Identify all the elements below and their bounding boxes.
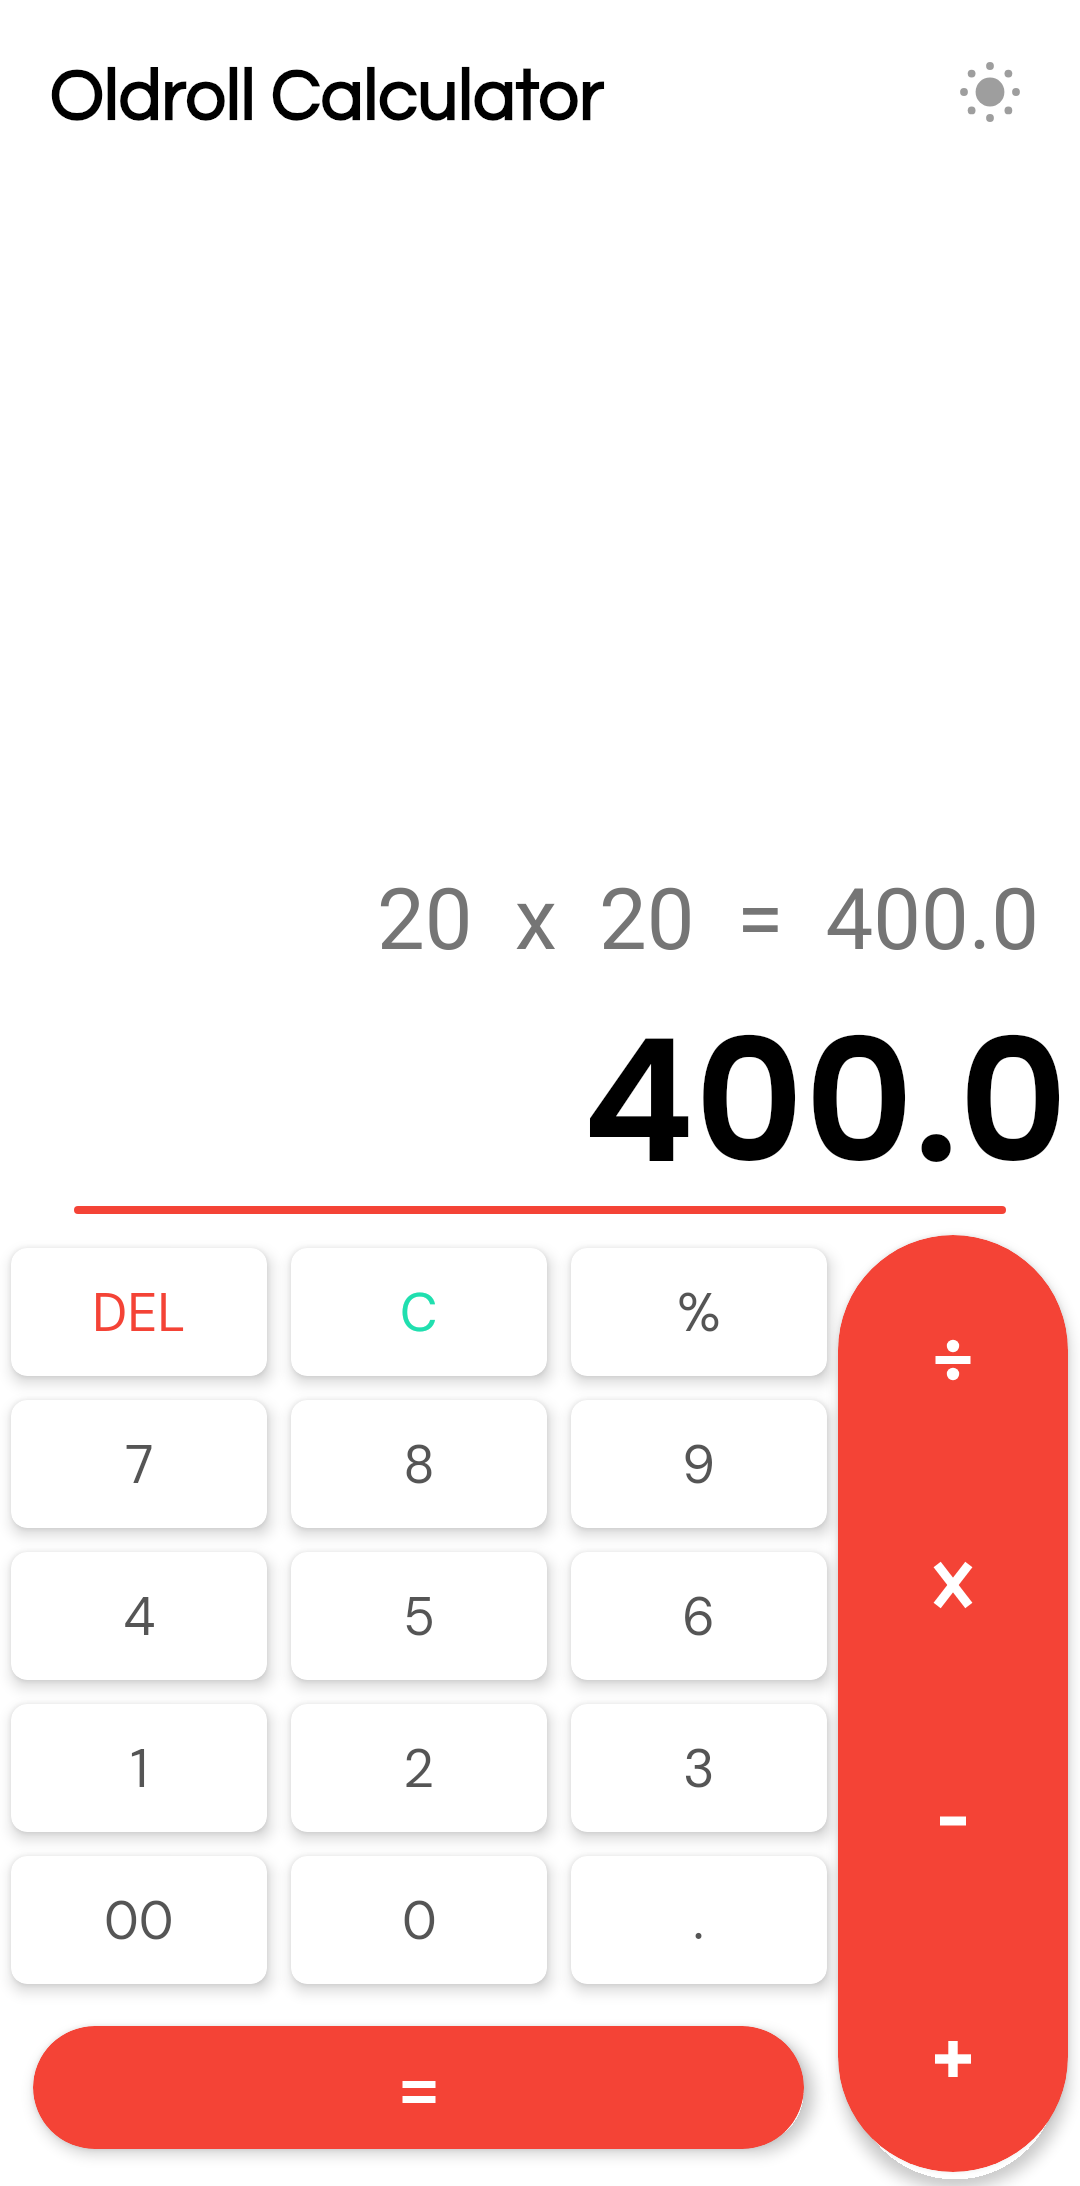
staticText: 3: [683, 1734, 715, 1803]
staticText: 2: [403, 1734, 435, 1803]
button[interactable]: Subtract: [838, 1704, 1068, 1938]
staticText: C: [400, 1278, 438, 1347]
staticText: Oldroll Calculator: [50, 60, 604, 134]
button[interactable]: 3: [571, 1704, 827, 1832]
button[interactable]: 4: [11, 1552, 267, 1680]
button[interactable]: Add: [838, 1938, 1068, 2172]
button[interactable]: Divide: [838, 1235, 1068, 1470]
button[interactable]: 2: [291, 1704, 547, 1832]
button[interactable]: 0: [291, 1856, 547, 1984]
button[interactable]: 7: [11, 1400, 267, 1528]
button[interactable]: 8: [291, 1400, 547, 1528]
staticText: 20 x 20 = 400.0: [0, 870, 1039, 970]
staticText: 0: [402, 1886, 437, 1955]
staticText: 9: [682, 1430, 716, 1499]
staticText: .: [693, 1886, 705, 1955]
staticText: 6: [682, 1582, 716, 1651]
button[interactable]: 00: [11, 1856, 267, 1984]
button[interactable]: 5: [291, 1552, 547, 1680]
button[interactable]: C: [291, 1248, 547, 1376]
button[interactable]: DEL: [11, 1248, 267, 1376]
staticText: DEL: [92, 1278, 186, 1347]
button[interactable]: [33, 2026, 804, 2149]
button[interactable]: .: [571, 1856, 827, 1984]
staticText: 400.0: [0, 983, 1068, 1221]
staticText: %: [677, 1278, 721, 1347]
staticText: 4: [123, 1582, 156, 1651]
staticText: 1: [130, 1734, 149, 1803]
button[interactable]: Toggle brightness: [940, 42, 1040, 142]
button[interactable]: %: [571, 1248, 827, 1376]
button[interactable]: 1: [11, 1704, 267, 1832]
staticText: 00: [104, 1886, 174, 1955]
staticText: 8: [403, 1430, 436, 1499]
button[interactable]: 6: [571, 1552, 827, 1680]
button[interactable]: Multiply: [838, 1470, 1068, 1704]
staticText: 7: [125, 1430, 154, 1499]
button[interactable]: 9: [571, 1400, 827, 1528]
staticText: 5: [403, 1582, 436, 1651]
